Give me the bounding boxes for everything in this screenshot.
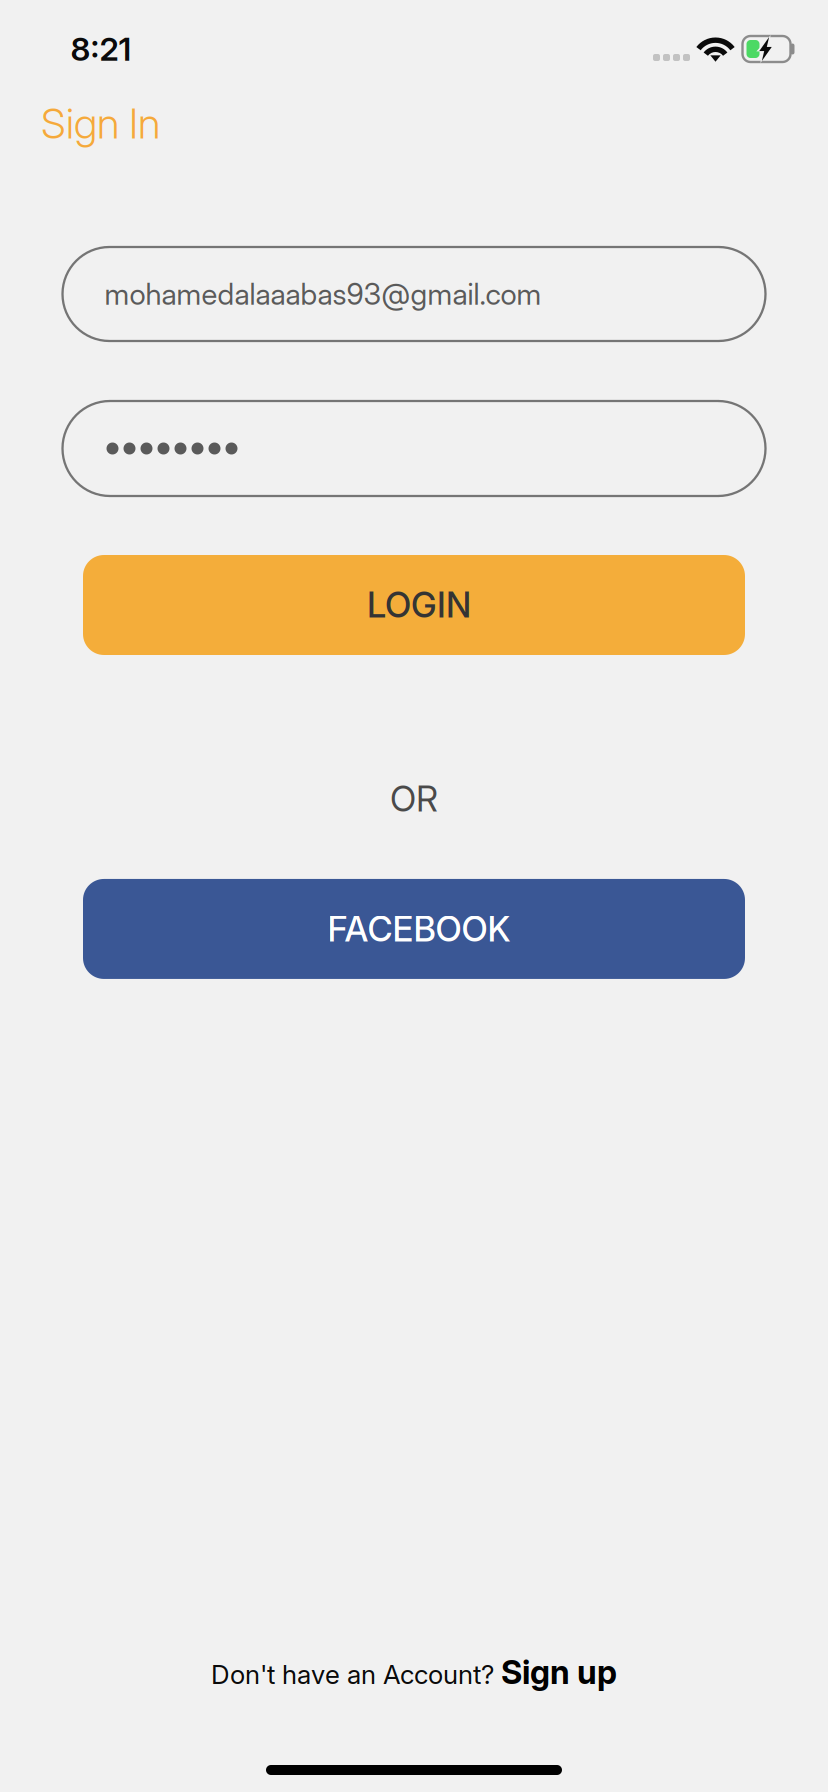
button[interactable]: Don't have an Account? (211, 1652, 617, 1692)
staticText: FACEBOOK (327, 908, 510, 950)
button[interactable] (62, 401, 765, 496)
staticText: OR (390, 778, 438, 820)
staticText: LOGIN (367, 584, 471, 626)
staticText: Don't have an Account? (211, 1659, 501, 1690)
button[interactable]: LOGIN (83, 555, 745, 655)
staticText: Sign up (501, 1652, 617, 1692)
button[interactable]: FACEBOOK (83, 879, 745, 979)
staticText: mohamedalaaabas93@gmail.com (104, 276, 541, 312)
staticText: 8:21 (70, 30, 131, 68)
button[interactable]: mohamedalaaabas93@gmail.com (62, 247, 765, 341)
staticText: Sign In (41, 98, 160, 148)
